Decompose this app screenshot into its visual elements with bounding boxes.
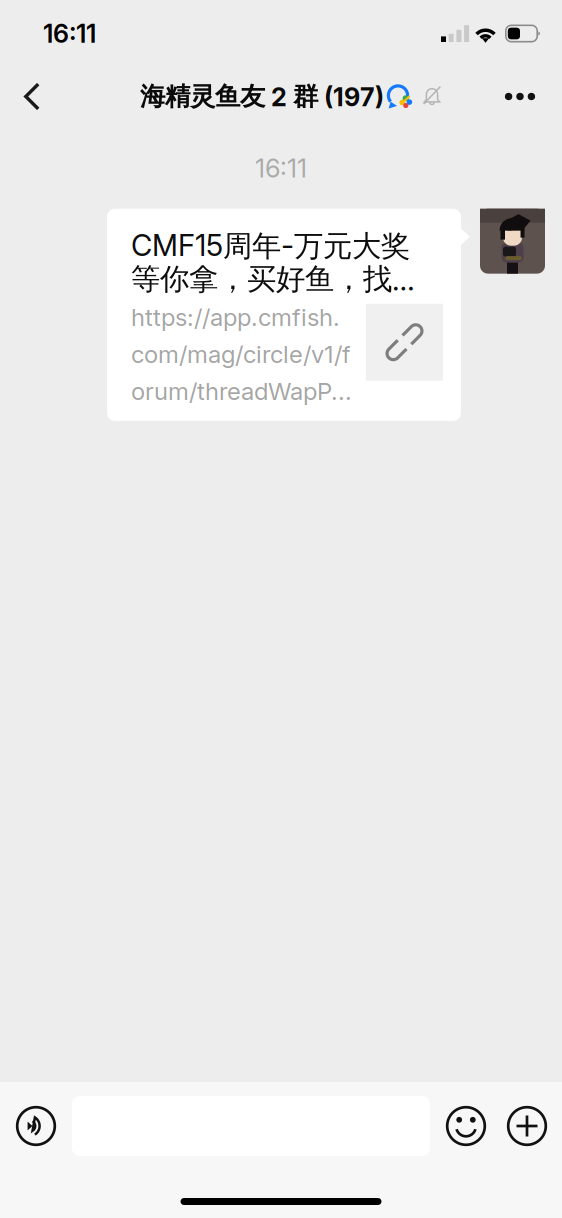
staticText: 海精灵鱼友 2 群 (197) xyxy=(140,80,384,112)
staticText: CMF15周年-万元大奖 等你拿，买好鱼，找… xyxy=(131,228,415,298)
button[interactable]: Voice input xyxy=(16,1096,56,1156)
button[interactable]: Back xyxy=(0,66,64,126)
staticText: https://app.cmfish. com/mag/circle/v1/f … xyxy=(131,303,352,406)
staticText: 16:11 xyxy=(255,153,307,184)
button[interactable]: Emoji xyxy=(446,1096,486,1156)
button[interactable]: CMF15周年-万元大奖 等你拿，买好鱼，找… xyxy=(107,209,461,421)
staticText: 16:11 xyxy=(43,18,96,49)
button[interactable]: More options xyxy=(507,1096,547,1156)
button[interactable]: More xyxy=(478,66,562,126)
